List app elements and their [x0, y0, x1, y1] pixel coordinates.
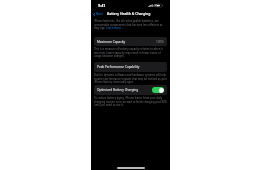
- staticText: iPhone batteries, like all rechargeable …: [94, 19, 167, 29]
- staticText: This is a measure of battery capacity re…: [94, 47, 167, 57]
- staticText: To reduce battery aging, iPhone learns f…: [94, 96, 167, 106]
- staticText: Battery Health & Charging: [107, 11, 151, 16]
- staticText: Maximum Capacity: [97, 40, 126, 44]
- staticText: 100%: [156, 40, 164, 44]
- staticText: Built-in dynamic software and hardware s…: [94, 73, 167, 83]
- staticText: Peak Performance Capability: [97, 65, 140, 69]
- staticText: 9:41: [98, 3, 106, 8]
- button[interactable]: Peak Performance Capability: [94, 62, 167, 72]
- button[interactable]: Optimized Battery Charging: [94, 85, 167, 95]
- staticText: Back: [96, 12, 104, 16]
- staticText: Optimized Battery Charging: [97, 88, 139, 92]
- button[interactable]: Maximum Capacity: [94, 37, 167, 46]
- button[interactable]: Back: [92, 11, 105, 17]
- button[interactable]: Optimized Battery Charging toggle: [152, 87, 164, 93]
